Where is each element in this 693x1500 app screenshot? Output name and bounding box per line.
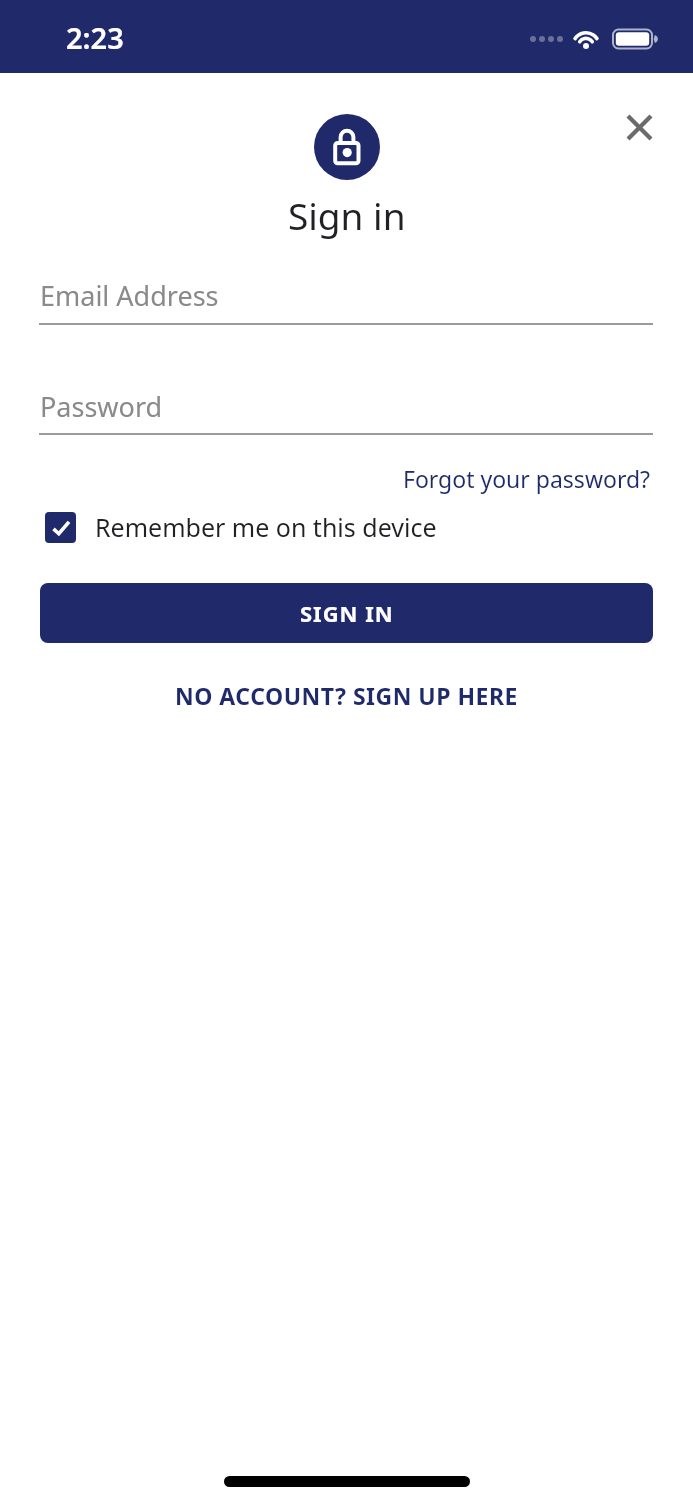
- staticText: Sign in: [288, 190, 406, 240]
- button[interactable]: SIGN IN: [40, 583, 653, 643]
- staticText: SIGN IN: [300, 598, 394, 628]
- staticText: Remember me on this device: [95, 510, 437, 544]
- button[interactable]: Remember me on this device: [45, 510, 437, 544]
- staticText: Password: [40, 388, 163, 425]
- button[interactable]: [616, 104, 662, 150]
- staticText: 2:23: [66, 18, 124, 57]
- button[interactable]: NO ACCOUNT? SIGN UP HERE: [175, 680, 518, 711]
- button[interactable]: Forgot your password?: [403, 463, 651, 494]
- staticText: Email Address: [40, 277, 219, 314]
